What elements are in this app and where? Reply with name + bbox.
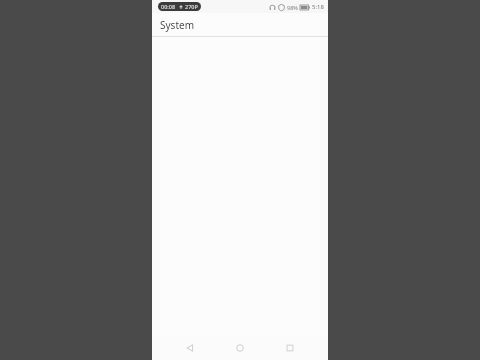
button[interactable]: Home <box>228 336 252 360</box>
staticText: 270P <box>185 3 198 10</box>
staticText: 98% <box>287 4 298 11</box>
staticText: 5:18 <box>312 3 324 11</box>
staticText: 00:08 <box>161 3 176 10</box>
button[interactable]: Back <box>178 336 202 360</box>
button[interactable]: Recent apps <box>278 336 302 360</box>
staticText: System <box>160 18 194 32</box>
button[interactable]: System <box>152 13 328 36</box>
